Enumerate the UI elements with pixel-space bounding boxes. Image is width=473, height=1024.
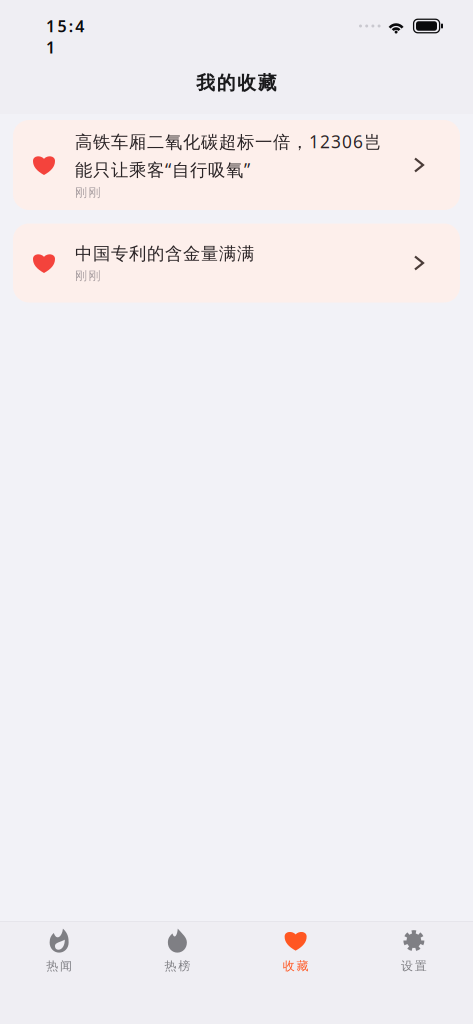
staticText: 设置 — [401, 959, 427, 973]
staticText: 收藏 — [283, 959, 308, 973]
button[interactable]: 高铁车厢二氧化碳超标一倍，12306岂 — [13, 120, 460, 210]
button[interactable]: 收藏 — [236, 929, 355, 973]
staticText: 15:41 — [46, 15, 96, 37]
button[interactable]: 热榜 — [118, 929, 236, 973]
staticText: 刚刚 — [75, 185, 100, 200]
staticText: 热榜 — [165, 959, 190, 973]
staticText: 刚刚 — [75, 268, 100, 283]
button[interactable]: 设置 — [355, 929, 473, 973]
staticText: 高铁车厢二氧化碳超标一倍，12306岂 — [75, 130, 381, 153]
staticText: 热闻 — [46, 959, 72, 973]
button[interactable]: 热闻 — [0, 929, 118, 973]
button[interactable]: 中国专利的含金量满满 — [13, 223, 460, 302]
staticText: 能只让乘客“自行吸氧” — [75, 158, 250, 181]
staticText: 中国专利的含金量满满 — [75, 243, 254, 264]
staticText: 我的收藏 — [196, 71, 277, 94]
